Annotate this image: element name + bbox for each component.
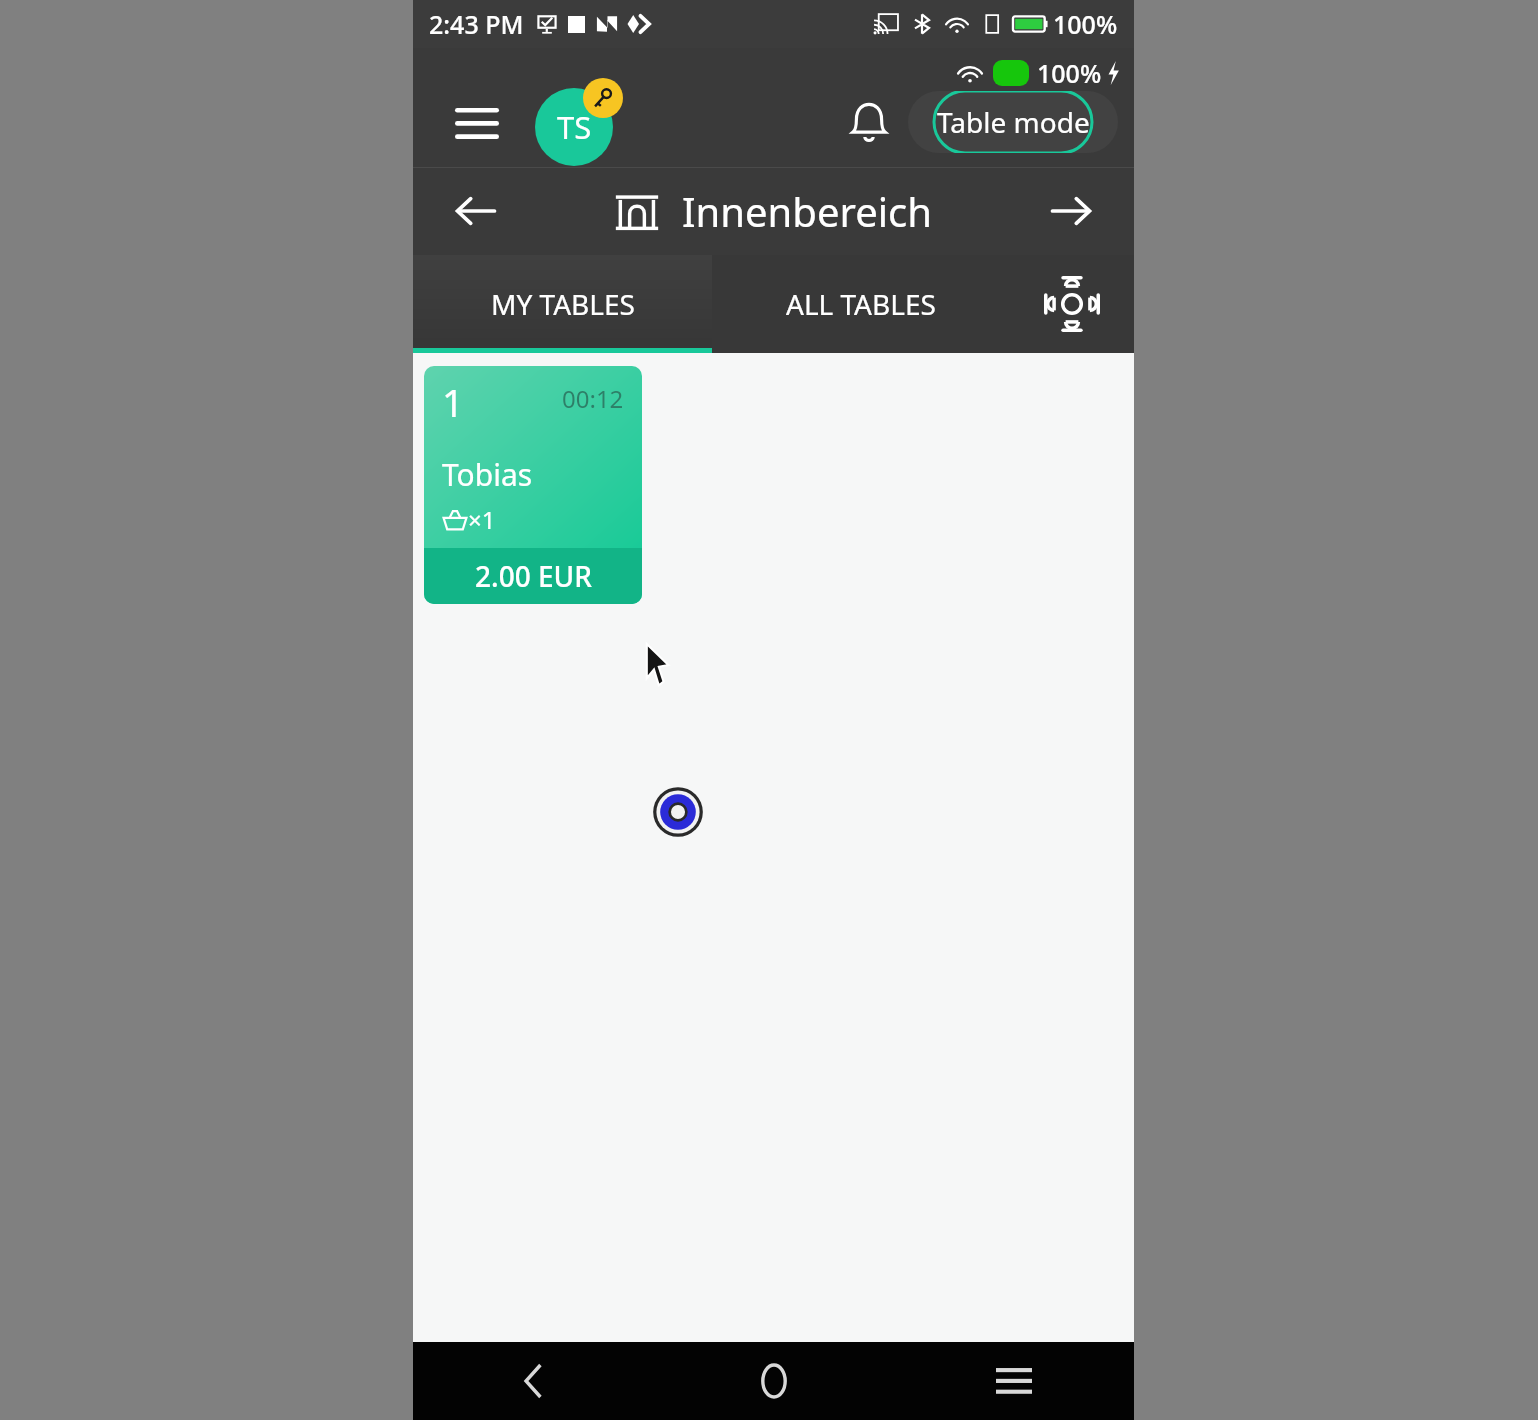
button[interactable]: Table mode (908, 91, 1118, 153)
button[interactable]: 1 (424, 366, 642, 604)
staticText: 100% (1053, 7, 1118, 41)
staticText: 2.00 EUR (475, 557, 592, 595)
button[interactable]: Home (654, 1342, 894, 1420)
button[interactable]: ALL TABLES (712, 255, 1010, 353)
button[interactable]: Table layout (1010, 255, 1134, 353)
button[interactable]: Recent apps (894, 1342, 1134, 1420)
staticText: 100% (1037, 56, 1102, 90)
button[interactable]: Menu (449, 94, 505, 150)
staticText: ALL TABLES (786, 285, 936, 323)
button[interactable]: MY TABLES (413, 255, 712, 353)
staticText: Tobias (442, 454, 533, 495)
staticText: ×1 (468, 503, 496, 536)
staticText: 00:12 (562, 382, 624, 415)
staticText: Innenbereich (682, 184, 932, 238)
button[interactable]: Notifications (840, 93, 898, 151)
button[interactable]: Account (535, 78, 623, 166)
button[interactable]: Next area (1038, 178, 1104, 244)
staticText: Table mode (937, 103, 1090, 141)
staticText: MY TABLES (491, 285, 635, 323)
button[interactable]: Back (413, 1342, 654, 1420)
staticText: 1 (442, 376, 464, 428)
staticText: TS (557, 106, 592, 148)
staticText: 2:43 PM (429, 7, 524, 41)
button[interactable]: Previous area (443, 178, 509, 244)
